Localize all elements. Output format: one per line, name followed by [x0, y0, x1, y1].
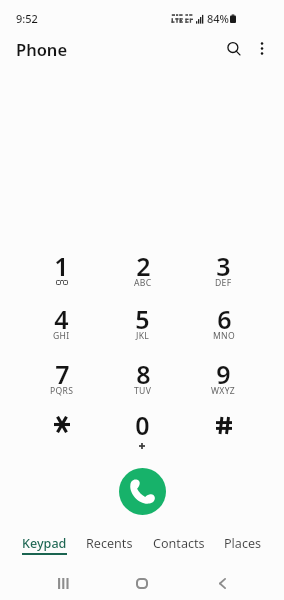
staticText: Places — [224, 535, 262, 552]
staticText: 9 — [216, 357, 231, 391]
button[interactable]: 4 — [21, 296, 102, 349]
staticText: 3 — [216, 249, 231, 283]
button[interactable]: More options — [247, 33, 277, 63]
button[interactable]: 3 — [183, 243, 264, 296]
staticText: Recents — [86, 535, 133, 552]
button[interactable]: Keypad — [22, 535, 67, 555]
staticText: Phone — [16, 38, 68, 60]
staticText: PQRS — [50, 385, 74, 397]
button[interactable]: Recents — [86, 535, 133, 552]
staticText: 4 — [54, 302, 69, 336]
staticText: 2 — [136, 249, 151, 283]
staticText: TUV — [134, 385, 152, 397]
button[interactable] — [21, 402, 102, 455]
staticText: Keypad — [22, 535, 67, 552]
staticText: MNO — [213, 330, 235, 342]
staticText: Contacts — [153, 535, 205, 552]
button[interactable]: Search — [219, 34, 249, 64]
staticText: 0 — [135, 408, 150, 442]
button[interactable]: 0 — [102, 402, 183, 455]
button[interactable]: Back — [202, 569, 242, 597]
button[interactable]: Call — [119, 468, 166, 515]
staticText: DEF — [215, 277, 232, 289]
staticText: GHI — [53, 330, 70, 342]
staticText: ABC — [134, 277, 152, 289]
staticText: 6 — [217, 302, 232, 336]
button[interactable]: 8 — [102, 351, 183, 404]
staticText: 9:52 — [16, 11, 38, 26]
button[interactable]: 9 — [183, 351, 264, 404]
button[interactable]: Recent apps — [43, 569, 83, 597]
button[interactable]: 5 — [102, 296, 183, 349]
button[interactable]: 7 — [21, 351, 102, 404]
button[interactable]: 6 — [183, 296, 264, 349]
staticText: 5 — [135, 302, 150, 336]
button[interactable]: 2 — [102, 243, 183, 296]
staticText: 7 — [55, 357, 70, 391]
staticText: WXYZ — [211, 385, 236, 397]
staticText: JKL — [136, 330, 150, 342]
staticText: 84% — [207, 11, 229, 26]
button[interactable]: Home — [122, 569, 162, 597]
button[interactable]: 1 — [21, 243, 102, 296]
button[interactable]: Contacts — [153, 535, 205, 552]
staticText: 1 — [54, 249, 69, 283]
button[interactable]: Places — [224, 535, 262, 552]
button[interactable] — [183, 402, 264, 455]
staticText: 8 — [136, 357, 151, 391]
